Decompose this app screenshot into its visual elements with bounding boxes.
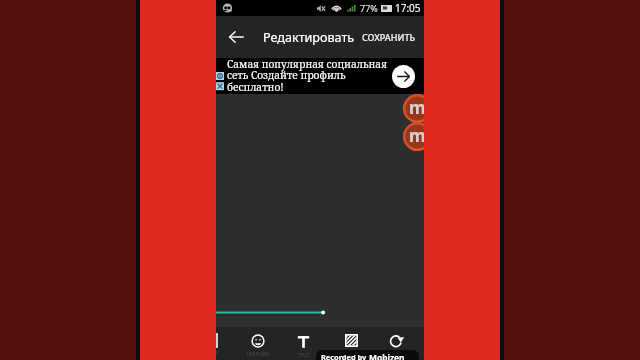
staticText: ПОВЕРНУТЬ — [384, 351, 410, 357]
button[interactable]: Фильтр — [334, 327, 368, 360]
button[interactable]: Open link — [392, 65, 415, 88]
staticText: НАКЛЕЙКА — [246, 351, 270, 357]
staticText: Самая популярная социальная сеть Создайт… — [227, 57, 387, 93]
staticText: Редактировать — [263, 29, 355, 46]
staticText: Recorded by — [321, 352, 369, 360]
staticText: СТИКЕР — [216, 350, 219, 356]
staticText: 17:05 — [395, 1, 421, 15]
staticText: СОХРАНИТЬ — [362, 31, 416, 43]
staticText: ФИЛЬТР — [342, 350, 360, 356]
staticText: 01:24 — [410, 147, 424, 151]
button[interactable]: Текст — [286, 327, 320, 360]
staticText: ТЕКСТ — [297, 352, 310, 358]
staticText: m — [409, 96, 424, 119]
staticText: 77% — [360, 2, 378, 14]
staticText: Mobizen — [369, 352, 405, 360]
button[interactable]: Наклейка — [241, 327, 275, 360]
button[interactable]: Back — [222, 23, 250, 51]
staticText: 01:24 — [410, 119, 424, 123]
button[interactable]: App badge — [403, 122, 424, 151]
button[interactable]: СОХРАНИТЬ — [354, 31, 424, 43]
button[interactable]: Повернуть — [380, 327, 414, 360]
staticText: m — [409, 124, 424, 147]
button[interactable]: App badge — [403, 94, 424, 123]
button[interactable]: Стикер — [216, 327, 227, 360]
